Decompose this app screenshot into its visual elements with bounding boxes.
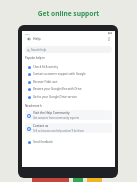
- staticText: Send feedback: [33, 140, 53, 144]
- staticText: Get online support: [0, 9, 137, 18]
- button[interactable]: Check fit & activity: [28, 63, 112, 71]
- staticText: Popular help re: [25, 56, 45, 60]
- staticText: Tell us how we can help and we'll be the…: [33, 129, 84, 133]
- staticText: Visit the Help Community: [33, 111, 70, 115]
- staticText: Recover Fitbit acct: [33, 80, 58, 84]
- staticText: Need more h: [25, 104, 42, 108]
- button[interactable]: More options: [105, 35, 112, 42]
- staticText: 9:41: [25, 32, 30, 35]
- staticText: Search help: [31, 48, 47, 52]
- staticText: Contact us: [33, 124, 49, 128]
- staticText: Contact customer support with Google: [33, 72, 86, 76]
- button[interactable]: Back: [25, 35, 32, 42]
- button[interactable]: Recover Fitbit acct: [28, 78, 112, 86]
- button[interactable]: Search help: [25, 46, 112, 53]
- staticText: Restore your Google files with Drive: [33, 87, 82, 91]
- button[interactable]: Restore your Google files with Drive: [28, 85, 112, 93]
- button[interactable]: Get to your Google Drive service: [28, 93, 112, 101]
- staticText: Help: [33, 36, 41, 41]
- button[interactable]: Visit the Help Community: [25, 110, 112, 120]
- staticText: ▮▮▮: [108, 32, 112, 35]
- staticText: Check fit & activity: [33, 65, 58, 69]
- staticText: Get to your Google Drive service: [33, 95, 77, 99]
- button[interactable]: Send feedback: [28, 138, 112, 146]
- button[interactable]: Contact customer support with Google: [28, 70, 112, 78]
- staticText: Get answers from community experts: [33, 116, 79, 120]
- button[interactable]: Contact us: [25, 123, 112, 133]
